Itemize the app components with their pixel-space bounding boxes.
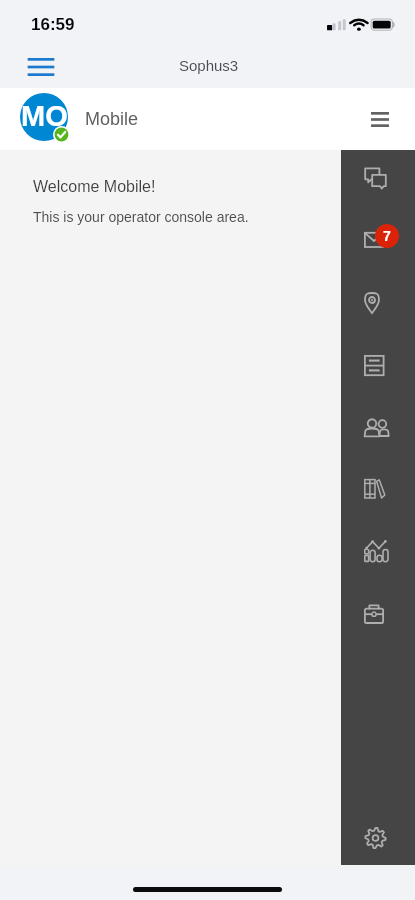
button[interactable]: Show sidebar <box>14 45 67 89</box>
button[interactable]: Open menu <box>358 90 402 136</box>
button[interactable]: Library <box>353 467 398 511</box>
button[interactable]: Records <box>353 344 398 388</box>
staticText: 7 <box>383 228 391 244</box>
staticText: Sophus3 <box>179 57 239 74</box>
button[interactable]: Chat <box>353 156 398 200</box>
staticText: Welcome Mobile! <box>33 178 156 196</box>
staticText: MO <box>21 100 68 132</box>
button[interactable]: Jobs <box>353 592 398 636</box>
button[interactable]: Contacts <box>353 406 398 450</box>
staticText: This is your operator console area. <box>33 209 249 225</box>
staticText: 16:59 <box>31 15 75 34</box>
button[interactable]: Settings <box>353 816 398 860</box>
button[interactable]: Reports <box>353 529 398 573</box>
button[interactable]: Messages <box>353 218 398 262</box>
button[interactable]: Locations <box>353 281 398 325</box>
staticText: Mobile <box>85 109 139 129</box>
